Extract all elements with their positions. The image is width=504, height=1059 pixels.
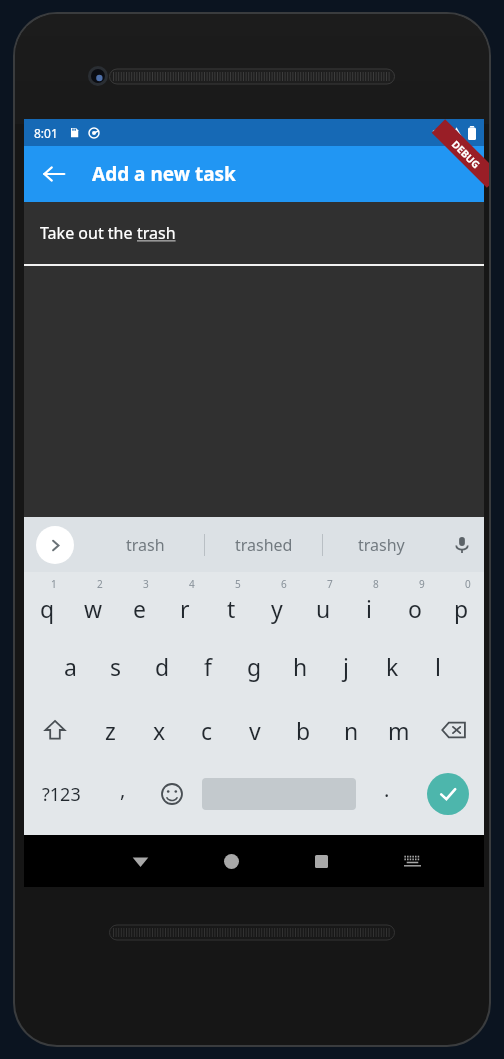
button[interactable]: x [135, 698, 183, 762]
staticText: 9 [419, 577, 425, 591]
staticText: trashy [358, 534, 405, 556]
button[interactable]: Home [205, 835, 257, 887]
staticText: 8 [373, 577, 379, 591]
staticText: trash [126, 534, 165, 556]
button[interactable]: ?123 [24, 762, 98, 826]
staticText: z [105, 715, 116, 746]
button[interactable]: , [98, 762, 147, 826]
staticText: f [204, 651, 212, 682]
staticText: v [249, 715, 261, 746]
staticText: 7 [327, 577, 333, 591]
button[interactable]: Back [30, 150, 78, 198]
button[interactable]: c [183, 698, 231, 762]
button[interactable]: Switch keyboard [386, 835, 438, 887]
button[interactable]: 0 [438, 572, 484, 634]
button[interactable]: 4 [162, 572, 208, 634]
staticText: DEBUG [449, 137, 483, 171]
staticText: ?123 [42, 782, 81, 807]
staticText: w [84, 593, 103, 624]
staticText: , [120, 776, 126, 803]
button[interactable]: 3 [116, 572, 162, 634]
staticText: trash [137, 222, 176, 244]
staticText: 5 [235, 577, 241, 591]
button[interactable]: n [327, 698, 375, 762]
staticText: r [180, 593, 190, 624]
staticText: 4 [189, 577, 195, 591]
button[interactable]: trashed [205, 517, 322, 572]
button[interactable]: 5 [208, 572, 254, 634]
staticText: u [316, 593, 331, 624]
button[interactable]: More suggestions [36, 526, 74, 564]
staticText: h [293, 651, 308, 682]
staticText: p [454, 593, 469, 624]
button[interactable]: Hide keyboard [114, 835, 166, 887]
staticText: y [271, 593, 283, 624]
staticText: . [384, 776, 390, 803]
button[interactable]: 1 [24, 572, 70, 634]
button[interactable]: g [231, 634, 277, 698]
staticText: s [110, 651, 122, 682]
staticText: e [133, 593, 146, 624]
button[interactable]: Voice input [440, 517, 484, 572]
button[interactable]: 8 [346, 572, 392, 634]
staticText: 8:01 [34, 125, 58, 141]
staticText: 1 [51, 577, 57, 591]
staticText: Take out the [40, 222, 137, 244]
staticText: k [386, 651, 399, 682]
staticText: g [247, 651, 262, 682]
staticText: b [296, 715, 311, 746]
staticText: 2 [97, 577, 103, 591]
staticText: 3 [143, 577, 149, 591]
staticText: d [155, 651, 170, 682]
staticText: m [388, 715, 410, 746]
button[interactable]: Recents [295, 835, 347, 887]
button[interactable]: trashy [323, 517, 440, 572]
button[interactable]: v [231, 698, 279, 762]
staticText: Add a new task [92, 161, 236, 187]
button[interactable]: f [185, 634, 231, 698]
button[interactable]: Emoji [147, 762, 196, 826]
staticText: l [435, 651, 441, 682]
button[interactable]: Done [427, 773, 469, 815]
staticText: 6 [281, 577, 287, 591]
button[interactable]: s [93, 634, 139, 698]
button[interactable]: d [139, 634, 185, 698]
button[interactable]: z [86, 698, 135, 762]
staticText: q [40, 593, 55, 624]
staticText: t [227, 593, 236, 624]
button[interactable]: 9 [392, 572, 438, 634]
button[interactable]: j [323, 634, 369, 698]
staticText: x [153, 715, 166, 746]
button[interactable]: Shift [24, 698, 86, 762]
button[interactable]: Backspace [423, 698, 484, 762]
button[interactable]: 2 [70, 572, 116, 634]
button[interactable]: b [279, 698, 327, 762]
button[interactable]: m [375, 698, 423, 762]
staticText: c [201, 715, 213, 746]
staticText: j [343, 651, 349, 682]
button[interactable]: k [369, 634, 415, 698]
staticText: i [366, 593, 372, 624]
button[interactable]: . [362, 762, 411, 826]
staticText: 0 [465, 577, 471, 591]
staticText: a [64, 651, 77, 682]
button[interactable]: trash [86, 517, 204, 572]
button[interactable]: 6 [254, 572, 300, 634]
staticText: o [408, 593, 422, 624]
staticText: n [344, 715, 359, 746]
button[interactable]: a [47, 634, 93, 698]
button[interactable]: 7 [300, 572, 346, 634]
button[interactable]: l [415, 634, 461, 698]
staticText: trashed [235, 534, 293, 556]
button[interactable]: h [277, 634, 323, 698]
